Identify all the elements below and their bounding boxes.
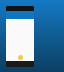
button[interactable]: Add xyxy=(18,55,23,60)
